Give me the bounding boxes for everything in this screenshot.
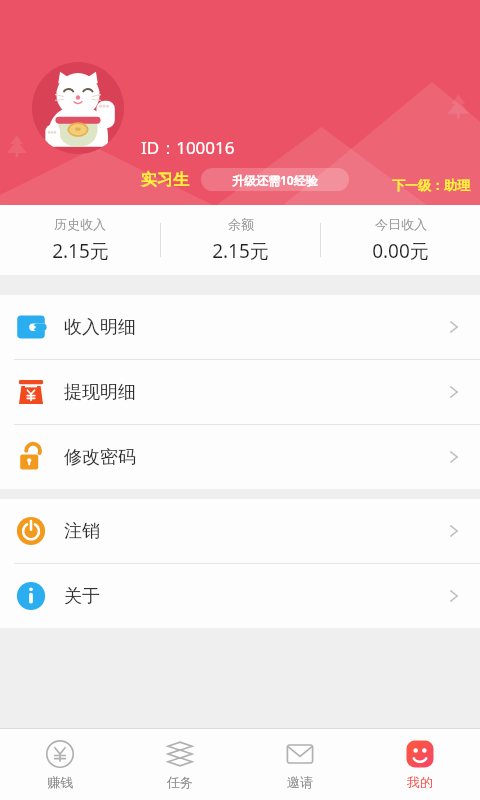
button[interactable]: 修改密码 [0, 425, 480, 489]
button[interactable]: 邀请 [240, 729, 360, 800]
button[interactable]: 注销 [0, 499, 480, 563]
button[interactable]: 历史收入 [0, 205, 160, 275]
button[interactable]: 赚钱 [0, 729, 120, 800]
staticText: 我的 [407, 774, 433, 790]
button[interactable]: 任务 [120, 729, 240, 800]
button[interactable]: 我的 [360, 729, 480, 800]
button[interactable]: 今日收入 [321, 205, 480, 275]
button[interactable]: 余额 [161, 205, 320, 275]
staticText: 提现明细 [64, 381, 136, 404]
button[interactable]: Avatar [32, 62, 124, 154]
staticText: 余额 [228, 216, 254, 232]
staticText: 2.15元 [52, 238, 109, 264]
staticText: 注销 [64, 520, 100, 543]
button[interactable]: 升级还需10经验 [201, 168, 349, 191]
staticText: 修改密码 [64, 446, 136, 469]
staticText: 今日收入 [375, 216, 427, 232]
button[interactable]: 关于 [0, 564, 480, 628]
staticText: 邀请 [287, 774, 313, 790]
staticText: ID：100016 [141, 136, 235, 159]
staticText: 任务 [167, 774, 193, 790]
staticText: 实习生 [141, 170, 189, 190]
button[interactable]: 提现明细 [0, 360, 480, 424]
button[interactable]: 收入明细 [0, 295, 480, 359]
staticText: 赚钱 [47, 774, 73, 790]
staticText: 下一级：助理 [392, 177, 470, 193]
staticText: 收入明细 [64, 316, 136, 339]
staticText: 关于 [64, 585, 100, 608]
staticText: 0.00元 [372, 238, 429, 264]
staticText: 历史收入 [54, 216, 106, 232]
staticText: 升级还需10经验 [232, 172, 318, 188]
staticText: 2.15元 [212, 238, 269, 264]
